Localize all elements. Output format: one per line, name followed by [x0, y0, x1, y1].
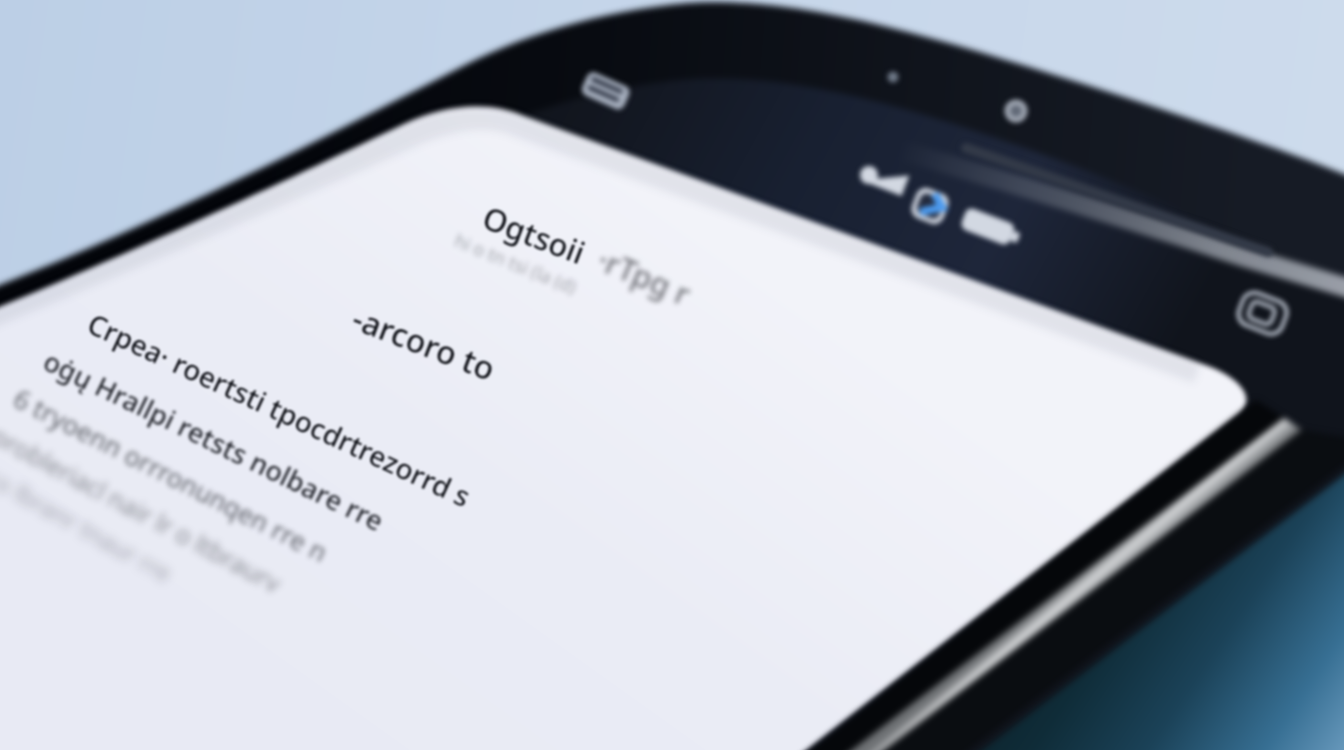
button[interactable]: Smartphone on a desk — [0, 0, 1344, 750]
